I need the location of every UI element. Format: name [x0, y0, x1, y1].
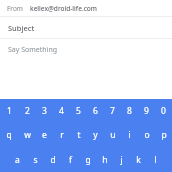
- button[interactable]: Key p: [155, 123, 172, 147]
- button[interactable]: Key 0: [155, 99, 172, 123]
- button[interactable]: Key e: [36, 123, 53, 147]
- staticText: 7: [110, 105, 115, 117]
- button[interactable]: Key w: [18, 123, 36, 147]
- staticText: 1: [7, 105, 12, 117]
- button[interactable]: Key l: [147, 147, 164, 172]
- staticText: From: [7, 4, 23, 13]
- staticText: e: [42, 129, 47, 141]
- staticText: w: [24, 129, 31, 141]
- button[interactable]: Key 3: [36, 99, 53, 123]
- staticText: Subject: [8, 23, 35, 33]
- button[interactable]: Key a: [8, 147, 26, 172]
- staticText: i: [128, 129, 131, 141]
- button[interactable]: Key i: [121, 123, 138, 147]
- staticText: Say Something: [8, 45, 58, 55]
- button[interactable]: Key 8: [121, 99, 138, 123]
- staticText: j: [120, 154, 123, 166]
- staticText: s: [33, 154, 38, 166]
- staticText: h: [102, 154, 108, 166]
- staticText: a: [15, 154, 20, 166]
- button[interactable]: Key h: [96, 147, 113, 172]
- staticText: t: [77, 129, 81, 141]
- staticText: 6: [93, 105, 98, 117]
- staticText: 2: [25, 105, 30, 117]
- button[interactable]: Key o: [138, 123, 155, 147]
- staticText: q: [6, 129, 12, 141]
- staticText: p: [161, 129, 167, 141]
- button[interactable]: Key 5: [70, 99, 87, 123]
- staticText: 5: [76, 105, 81, 117]
- staticText: f: [69, 154, 72, 166]
- button[interactable]: Key 7: [104, 99, 121, 123]
- button[interactable]: Key q: [0, 123, 18, 147]
- button[interactable]: Say Something: [0, 39, 172, 60]
- staticText: 0: [161, 105, 166, 117]
- button[interactable]: Key t: [70, 123, 87, 147]
- button[interactable]: Key g: [79, 147, 96, 172]
- staticText: 8: [127, 105, 132, 117]
- button[interactable]: Key y: [87, 123, 104, 147]
- staticText: r: [60, 129, 64, 141]
- button[interactable]: Key 2: [18, 99, 36, 123]
- button[interactable]: Key s: [26, 147, 44, 172]
- staticText: y: [93, 129, 98, 141]
- button[interactable]: Key 1: [0, 99, 18, 123]
- button[interactable]: Key u: [104, 123, 121, 147]
- button[interactable]: Key 6: [87, 99, 104, 123]
- staticText: l: [154, 154, 157, 166]
- button[interactable]: Key k: [130, 147, 147, 172]
- staticText: g: [85, 154, 91, 166]
- staticText: o: [144, 129, 150, 141]
- staticText: 9: [144, 105, 149, 117]
- staticText: kellex@droid-life.com: [30, 4, 97, 13]
- button[interactable]: From: [0, 0, 172, 16]
- staticText: u: [110, 129, 116, 141]
- staticText: k: [136, 154, 141, 166]
- button[interactable]: Key d: [44, 147, 62, 172]
- button[interactable]: Key 4: [53, 99, 70, 123]
- staticText: d: [50, 154, 56, 166]
- button[interactable]: Key f: [62, 147, 79, 172]
- staticText: 3: [42, 105, 47, 117]
- button[interactable]: Key j: [113, 147, 130, 172]
- button[interactable]: Subject: [0, 17, 172, 38]
- button[interactable]: Key 9: [138, 99, 155, 123]
- button[interactable]: Key r: [53, 123, 70, 147]
- staticText: 4: [59, 105, 64, 117]
